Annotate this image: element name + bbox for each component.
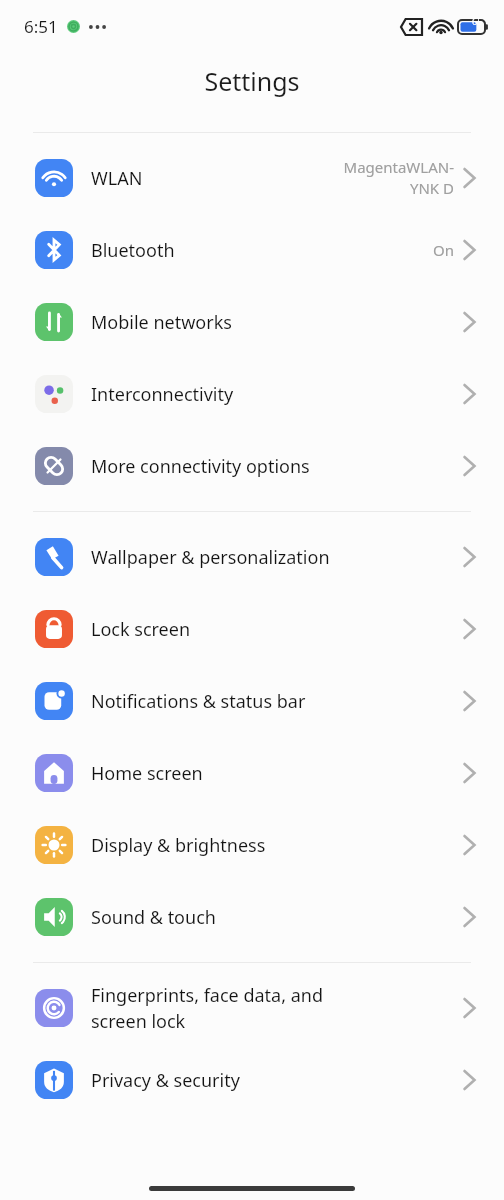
button[interactable]: Notifications & status bar	[0, 665, 504, 737]
staticText: Mobile networks	[91, 310, 454, 335]
staticText: Settings	[204, 64, 300, 98]
button[interactable]: Mobile networks	[0, 286, 504, 358]
button[interactable]: Wallpaper & personalization	[0, 521, 504, 593]
staticText: 6:51	[24, 15, 58, 38]
button[interactable]: Home screen	[0, 737, 504, 809]
staticText: Sound & touch	[91, 905, 454, 930]
staticText: Home screen	[91, 761, 454, 786]
button[interactable]: Privacy & security	[0, 1044, 504, 1116]
staticText: 65	[472, 15, 483, 27]
button[interactable]: More connectivity options	[0, 430, 504, 502]
staticText: More connectivity options	[91, 454, 454, 479]
button[interactable]: Fingerprints, face data, and screen lock	[0, 972, 504, 1044]
staticText: WLAN	[91, 166, 326, 191]
staticText: Lock screen	[91, 617, 454, 642]
staticText: Interconnectivity	[91, 382, 454, 407]
staticText: On	[326, 240, 454, 260]
staticText: MagentaWLAN-YNK D	[326, 157, 454, 199]
button[interactable]: Bluetooth	[0, 214, 504, 286]
staticText: Fingerprints, face data, and screen lock	[91, 983, 454, 1034]
staticText: Privacy & security	[91, 1068, 454, 1093]
button[interactable]: WLAN	[0, 142, 504, 214]
staticText: Display & brightness	[91, 833, 454, 858]
button[interactable]: Display & brightness	[0, 809, 504, 881]
button[interactable]: Lock screen	[0, 593, 504, 665]
staticText: Bluetooth	[91, 238, 326, 263]
button[interactable]: Interconnectivity	[0, 358, 504, 430]
button[interactable]: Sound & touch	[0, 881, 504, 953]
staticText: Wallpaper & personalization	[91, 545, 454, 570]
staticText: Notifications & status bar	[91, 689, 454, 714]
